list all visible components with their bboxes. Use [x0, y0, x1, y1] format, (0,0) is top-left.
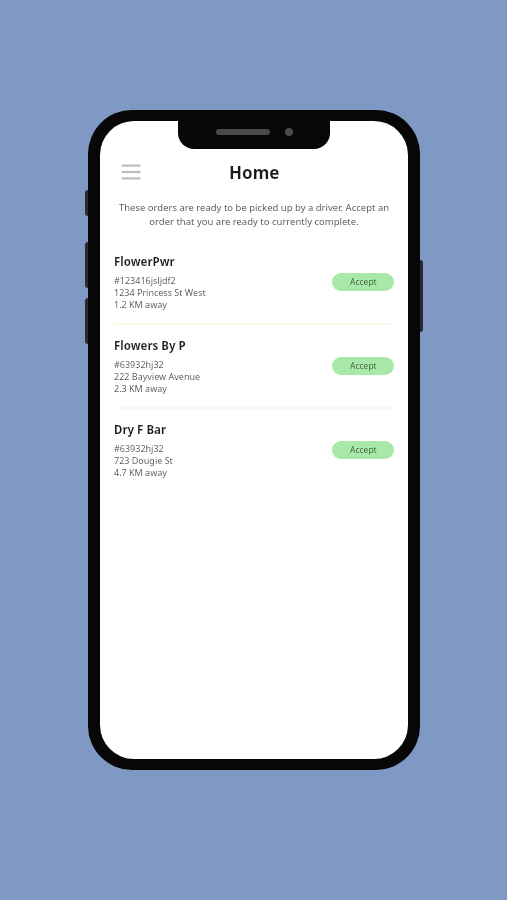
- button[interactable]: FlowerPwr: [100, 254, 408, 310]
- staticText: 723 Dougie St: [114, 454, 173, 466]
- staticText: 1234 Princess St West: [114, 286, 206, 298]
- staticText: These orders are ready to be picked up b…: [115, 201, 393, 228]
- button[interactable]: Open navigation menu: [116, 157, 146, 187]
- staticText: #63932hj32: [114, 358, 164, 370]
- staticText: #123416jsljdf2: [114, 274, 176, 286]
- staticText: #63932hj32: [114, 442, 164, 454]
- button[interactable]: Accept: [332, 273, 394, 291]
- staticText: 1.2 KM away: [114, 298, 167, 310]
- staticText: Flowers By P: [114, 338, 186, 354]
- staticText: Dry F Bar: [114, 422, 167, 438]
- button[interactable]: Accept: [332, 357, 394, 375]
- staticText: Accept: [350, 276, 377, 288]
- staticText: Home: [229, 161, 280, 184]
- staticText: Accept: [350, 444, 377, 456]
- staticText: FlowerPwr: [114, 254, 175, 270]
- button[interactable]: Dry F Bar: [100, 422, 408, 478]
- staticText: 222 Bayview Avenue: [114, 370, 201, 382]
- button[interactable]: Flowers By P: [100, 338, 408, 394]
- staticText: 4.7 KM away: [114, 466, 167, 478]
- staticText: Accept: [350, 360, 377, 372]
- staticText: 2.3 KM away: [114, 382, 167, 394]
- button[interactable]: Accept: [332, 441, 394, 459]
